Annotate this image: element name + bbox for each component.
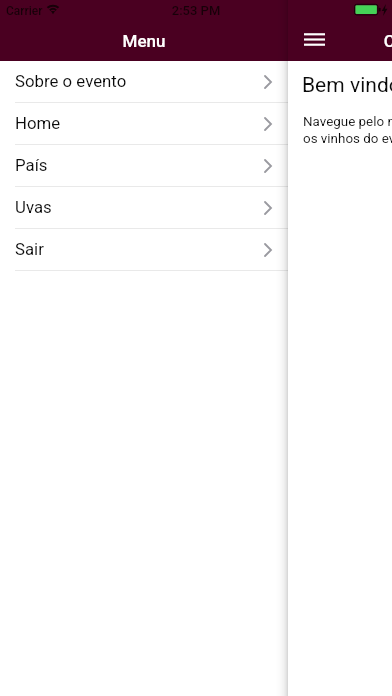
button[interactable]: Home bbox=[0, 103, 288, 145]
staticText: Menu bbox=[0, 31, 288, 51]
button[interactable]: Sobre o evento bbox=[0, 61, 288, 103]
staticText: Uvas bbox=[15, 197, 52, 217]
staticText: Navegue pelo menu e descubra os vinhos d… bbox=[303, 114, 392, 146]
button[interactable]: Sair bbox=[0, 229, 288, 271]
staticText: Home bbox=[15, 113, 61, 133]
staticText: Bem bbox=[302, 73, 345, 98]
staticText: vindo bbox=[350, 73, 392, 98]
staticText: Sobre o evento bbox=[15, 71, 127, 91]
button[interactable]: Uvas bbox=[0, 187, 288, 229]
staticText: 2:53 PM bbox=[0, 3, 392, 18]
staticText: País bbox=[15, 155, 48, 175]
button[interactable]: País bbox=[0, 145, 288, 187]
staticText: Carta de Vinhos do Evento bbox=[288, 31, 392, 51]
staticText: Sair bbox=[15, 239, 44, 259]
staticText: Carrier bbox=[6, 4, 43, 18]
button[interactable]: Open menu bbox=[298, 26, 330, 54]
